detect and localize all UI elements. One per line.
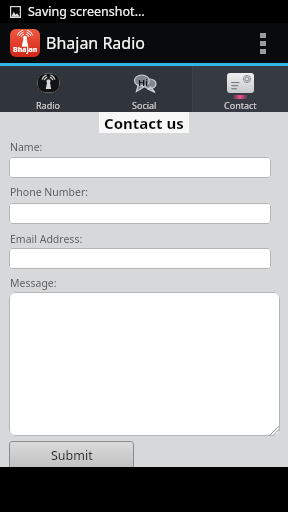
staticText: Contact us	[104, 113, 184, 133]
button[interactable]	[9, 248, 271, 269]
staticText: Social	[132, 99, 157, 111]
staticText: Email Address:	[10, 232, 83, 246]
button[interactable]	[9, 203, 271, 224]
staticText: Radio	[36, 99, 60, 111]
staticText: Submit	[51, 447, 93, 464]
button[interactable]: Hi	[96, 66, 192, 112]
staticText: Message:	[10, 276, 57, 290]
staticText: Phone Number:	[10, 185, 89, 199]
staticText: Hi	[138, 76, 149, 89]
staticText: Saving screenshot…	[28, 3, 145, 20]
button[interactable]: More options	[238, 23, 288, 63]
button[interactable]: Radio	[0, 66, 96, 112]
staticText: Name:	[10, 140, 43, 154]
button[interactable]: Contact	[192, 66, 288, 112]
button[interactable]: Submit	[9, 441, 134, 467]
button[interactable]	[9, 157, 271, 178]
staticText: Bhajan	[13, 45, 38, 55]
staticText: Bhajan Radio	[46, 32, 145, 54]
button[interactable]	[9, 292, 280, 436]
staticText: Contact	[224, 99, 257, 111]
